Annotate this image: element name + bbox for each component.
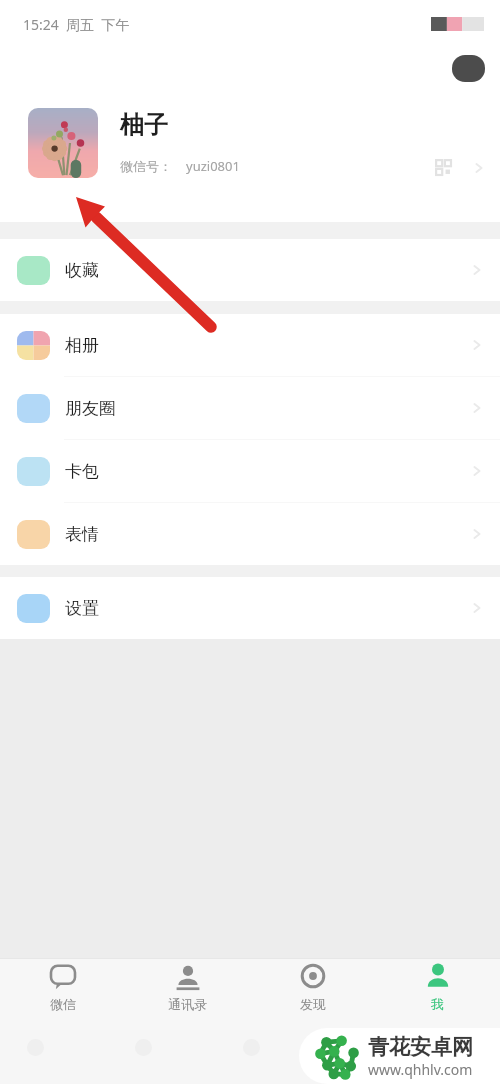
staticText: 微信号： xyxy=(120,158,172,174)
staticText: 我 xyxy=(431,996,444,1012)
staticText: 表情 xyxy=(65,524,99,545)
staticText: 收藏 xyxy=(65,260,99,281)
button[interactable]: My QR code xyxy=(435,159,452,176)
button[interactable]: 收藏 xyxy=(0,239,500,301)
staticText: 通讯录 xyxy=(168,996,207,1012)
button[interactable]: 发现 xyxy=(250,959,375,1014)
button[interactable]: 我 xyxy=(375,959,500,1014)
staticText: 发现 xyxy=(300,996,326,1012)
staticText: yuzi0801 xyxy=(186,157,240,175)
staticText: 15:24 周五 下午 xyxy=(23,15,130,34)
button[interactable]: 设置 xyxy=(0,577,500,639)
staticText: 微信 xyxy=(50,996,76,1012)
staticText: 朋友圈 xyxy=(65,398,116,419)
button[interactable]: Home xyxy=(129,1033,157,1061)
button[interactable]: 柚子 xyxy=(0,48,500,222)
button[interactable]: 表情 xyxy=(0,503,500,565)
staticText: www.qhhlv.com xyxy=(368,1060,473,1079)
staticText: 青花安卓网 xyxy=(368,1034,473,1060)
button[interactable]: 相册 xyxy=(0,314,500,376)
staticText: 相册 xyxy=(65,335,99,356)
button[interactable]: 朋友圈 xyxy=(0,377,500,439)
button[interactable]: Back xyxy=(21,1033,49,1061)
staticText: 卡包 xyxy=(65,461,99,482)
button[interactable]: More options xyxy=(452,55,485,82)
staticText: 柚子 xyxy=(120,110,168,140)
button[interactable]: 微信 xyxy=(0,959,125,1014)
button[interactable]: 通讯录 xyxy=(125,959,250,1014)
button[interactable]: Recents xyxy=(237,1033,265,1061)
button[interactable]: 卡包 xyxy=(0,440,500,502)
staticText: 设置 xyxy=(65,598,99,619)
